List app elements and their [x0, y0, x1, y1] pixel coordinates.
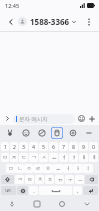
staticText: ㅁ — [8, 165, 14, 172]
button[interactable]: Language — [17, 186, 28, 195]
staticText: !#1 — [5, 188, 12, 194]
button[interactable]: ㄷ — [19, 153, 28, 162]
button[interactable]: ㅂ — [1, 153, 9, 162]
staticText: ㅠ — [57, 176, 63, 183]
button[interactable]: ㅗ — [53, 164, 63, 173]
button[interactable]: 1588-3366 — [18, 16, 76, 27]
button[interactable]: ㅌ — [25, 175, 34, 184]
button[interactable]: Backspace — [85, 175, 98, 184]
button[interactable]: . — [29, 186, 38, 195]
button[interactable]: ㅑ — [69, 153, 78, 162]
staticText: ㅈ — [11, 154, 17, 161]
button[interactable]: More options — [82, 15, 95, 28]
button[interactable]: Emoji — [77, 114, 86, 123]
button[interactable]: ㅡ — [75, 175, 84, 184]
button[interactable]: , — [73, 186, 82, 195]
staticText: 1 — [4, 143, 7, 150]
staticText: 7 — [62, 143, 65, 150]
button[interactable]: ㅣ — [83, 164, 93, 173]
staticText: 6 — [52, 143, 55, 150]
button[interactable]: ㄱ — [29, 153, 38, 162]
button[interactable]: Home — [49, 197, 74, 211]
staticText: 문자 메시지 — [19, 115, 48, 123]
staticText: ㅊ — [37, 176, 43, 183]
button[interactable]: ㅏ — [73, 164, 83, 173]
staticText: ㅓ — [65, 165, 71, 172]
staticText: 0 — [92, 143, 95, 150]
staticText: 1588-3366 — [30, 16, 70, 27]
staticText: ㅕ — [61, 154, 67, 161]
staticText: ㅍ — [47, 176, 53, 183]
button[interactable]: ㅊ — [35, 175, 44, 184]
staticText: ㅌ — [27, 176, 33, 183]
button[interactable]: ㅋ — [15, 175, 24, 184]
button[interactable]: Expand — [3, 114, 12, 123]
staticText: ㅣ — [85, 165, 91, 172]
staticText: 3 — [22, 143, 25, 150]
button[interactable]: ㅕ — [59, 153, 68, 162]
button[interactable]: 2 — [10, 142, 18, 151]
button[interactable]: ㅜ — [65, 175, 74, 184]
button[interactable]: Attach — [87, 114, 96, 123]
button[interactable]: 8 — [69, 142, 78, 151]
staticText: ㅂ — [2, 154, 8, 161]
button[interactable]: ㅐ — [79, 153, 88, 162]
button[interactable]: 0 — [89, 142, 98, 151]
button[interactable]: Sticker — [4, 127, 16, 139]
staticText: ㅡ — [77, 176, 83, 183]
button[interactable]: 5 — [39, 142, 48, 151]
button[interactable]: ㅠ — [55, 175, 64, 184]
staticText: ㅑ — [71, 154, 77, 161]
button[interactable]: ㅔ — [89, 153, 98, 162]
button[interactable]: 1 — [1, 142, 9, 151]
button[interactable]: Hide keyboard — [74, 197, 99, 211]
button[interactable]: Voice input — [0, 197, 24, 211]
staticText: ㅐ — [81, 154, 87, 161]
button[interactable]: Recents — [24, 197, 49, 211]
staticText: 5 — [42, 143, 45, 150]
staticText: ㅗ — [55, 165, 61, 172]
button[interactable]: ㄴ — [15, 164, 24, 173]
staticText: ㅎ — [45, 165, 51, 172]
button[interactable]: Keyboard — [51, 127, 63, 139]
staticText: ㅅ — [41, 154, 47, 161]
staticText: ㄱ — [31, 154, 37, 161]
staticText: ㅏ — [75, 165, 81, 172]
button[interactable]: Settings — [67, 127, 79, 139]
button[interactable]: More — [83, 127, 95, 139]
button[interactable]: 3 — [19, 142, 28, 151]
button[interactable]: ㅇ — [24, 164, 33, 173]
staticText: ㅋ — [17, 176, 23, 183]
staticText: ㄹ — [35, 165, 41, 172]
button[interactable]: ㅅ — [39, 153, 48, 162]
button[interactable]: Back — [4, 15, 17, 28]
button[interactable]: 문자 메시지 — [13, 114, 75, 124]
button[interactable]: 9 — [79, 142, 88, 151]
button[interactable]: Emoji — [20, 127, 32, 139]
button[interactable]: !#1 — [1, 186, 16, 195]
staticText: ㄴ — [17, 165, 23, 172]
button[interactable]: GIF — [36, 127, 48, 139]
staticText: . — [33, 187, 35, 194]
button[interactable]: 7 — [59, 142, 68, 151]
button[interactable]: ㄹ — [33, 164, 43, 173]
button[interactable]: ㅓ — [63, 164, 73, 173]
staticText: ㅇ — [26, 165, 32, 172]
staticText: 9 — [82, 143, 85, 150]
button[interactable]: 6 — [49, 142, 58, 151]
button[interactable]: ㅍ — [45, 175, 54, 184]
button[interactable]: ㅈ — [10, 153, 18, 162]
button[interactable]: ㅁ — [6, 164, 15, 173]
staticText: ㅜ — [67, 176, 73, 183]
staticText: ㅛ — [51, 154, 57, 161]
button[interactable]: ㅛ — [49, 153, 58, 162]
staticText: 12:45 — [5, 2, 20, 9]
button[interactable]: Space — [39, 186, 72, 195]
staticText: 2 — [13, 143, 16, 150]
button[interactable]: Enter — [83, 186, 98, 195]
staticText: ㄷ — [21, 154, 27, 161]
button[interactable]: 4 — [29, 142, 38, 151]
button[interactable]: ㅎ — [43, 164, 53, 173]
button[interactable]: Shift — [1, 175, 14, 184]
staticText: ㅔ — [91, 154, 97, 161]
